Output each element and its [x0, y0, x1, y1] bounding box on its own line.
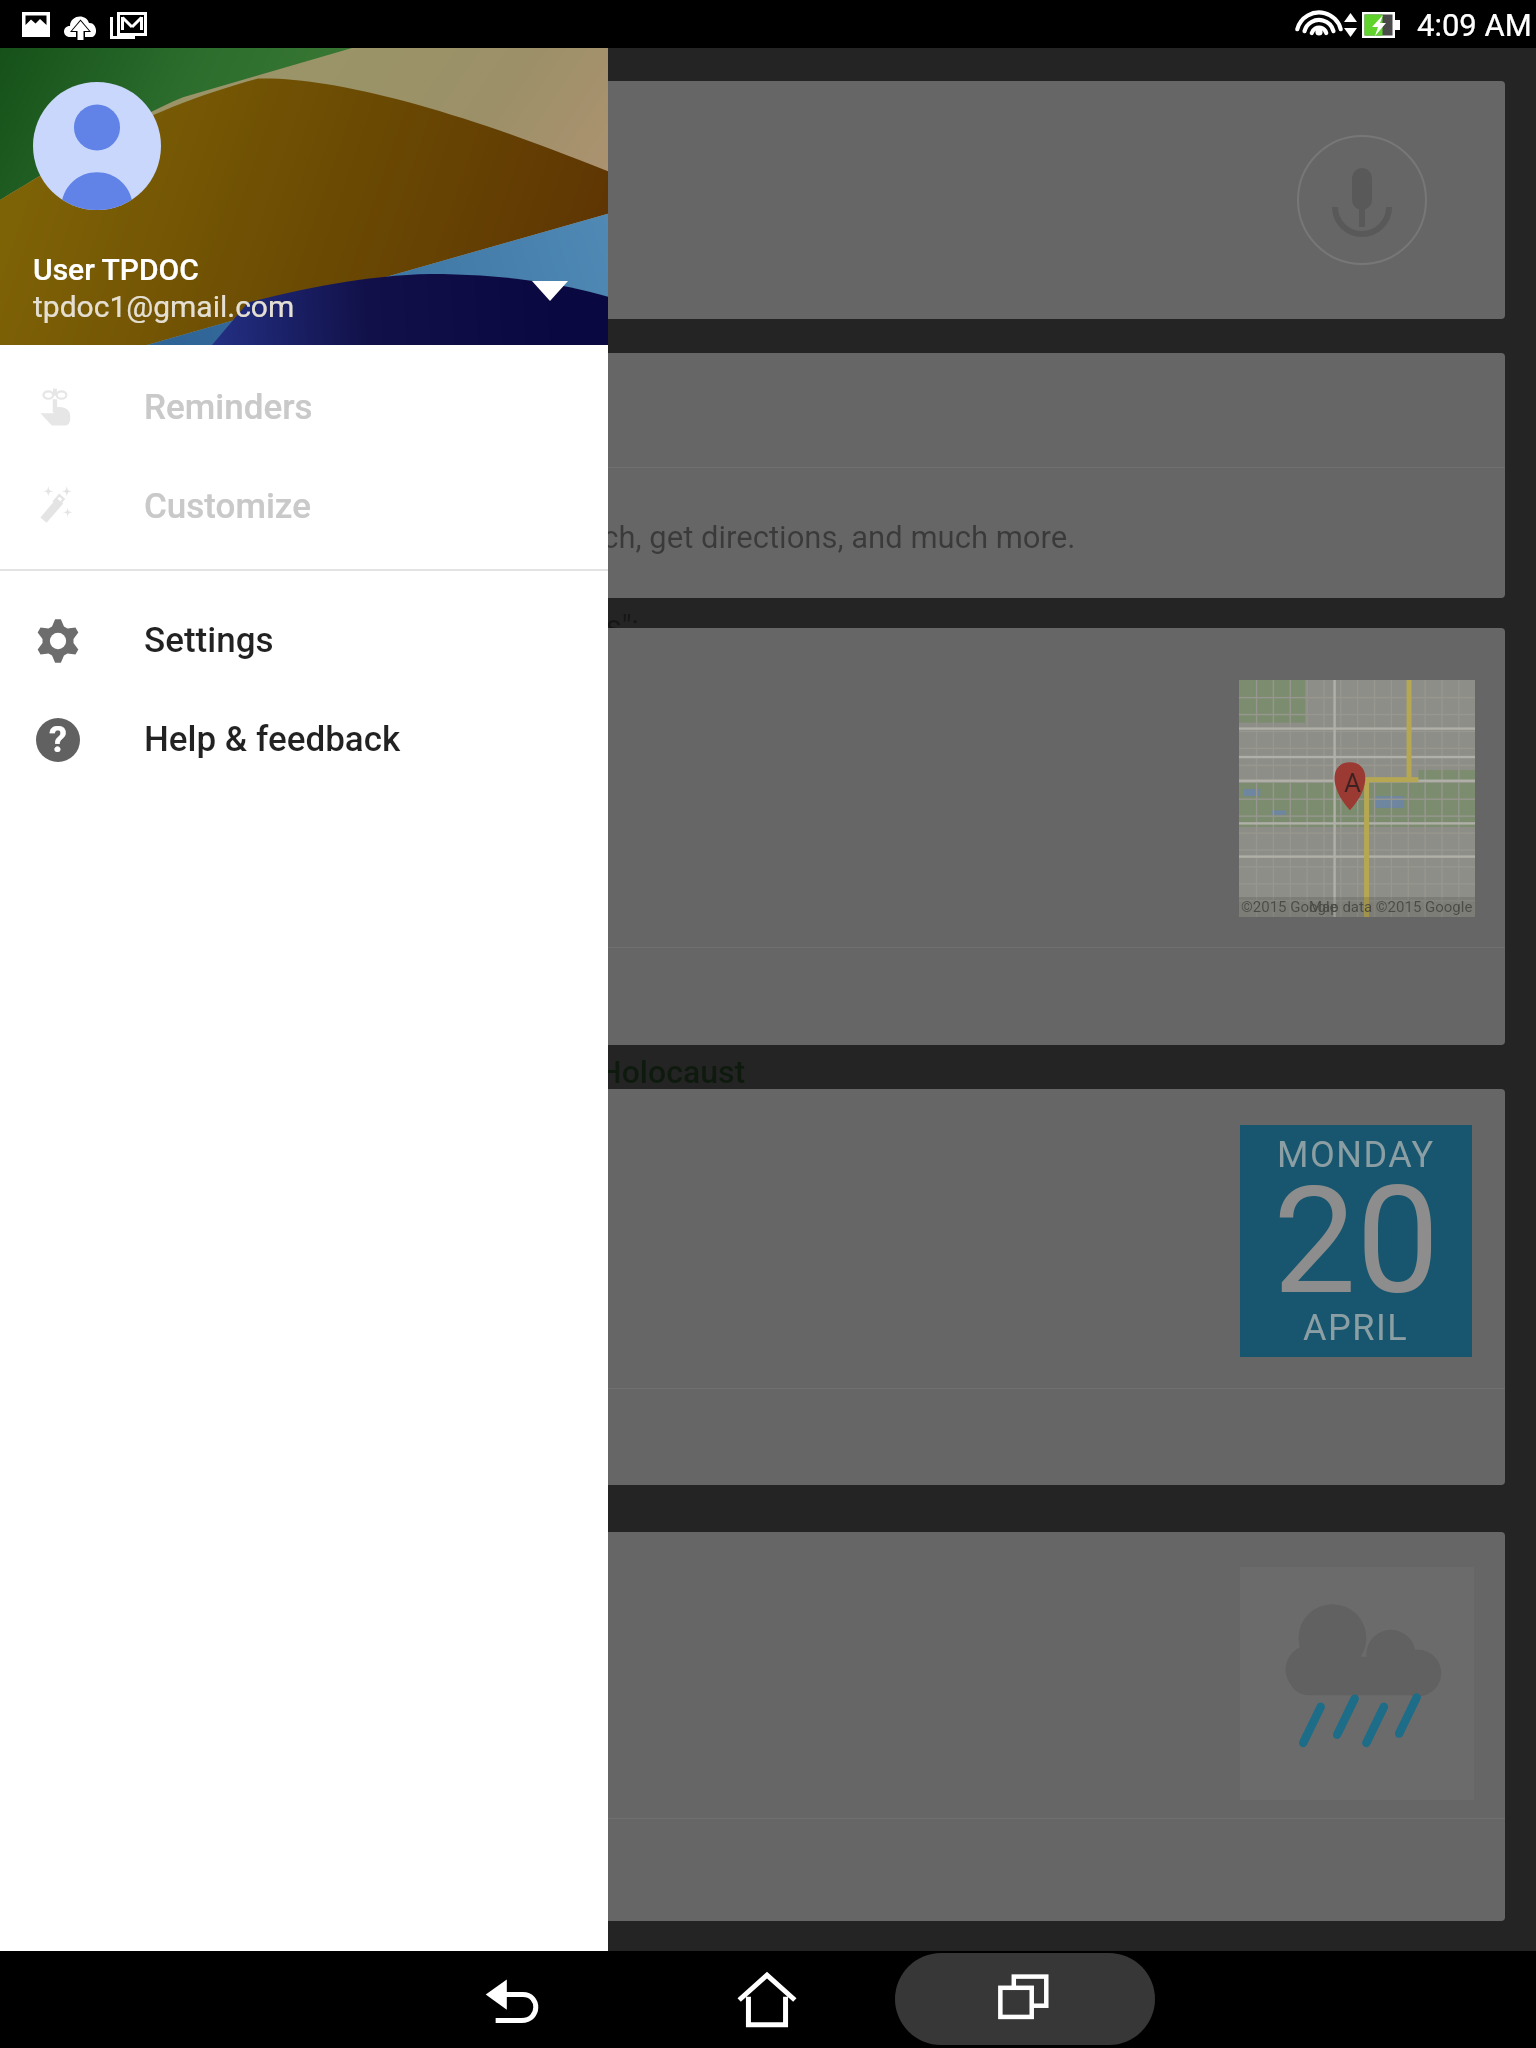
- button[interactable]: Home: [687, 1951, 847, 2048]
- staticText: ©2015 Google: [1241, 898, 1338, 916]
- staticText: MONDAY: [1277, 1134, 1435, 1176]
- staticText: Help & feedback: [144, 719, 401, 760]
- staticText: 20: [1273, 1155, 1440, 1328]
- staticText: Customize: [144, 486, 311, 527]
- staticText: APRIL: [1303, 1307, 1409, 1349]
- button[interactable]: [26, 1532, 1505, 1921]
- staticText: Use Google Now to search, get directions…: [271, 519, 1076, 555]
- staticText: Reminders: [144, 387, 313, 428]
- staticText: Map data ©2015 Google: [1309, 898, 1473, 916]
- button[interactable]: Settings: [0, 591, 608, 690]
- button[interactable]: ?: [0, 690, 608, 789]
- button[interactable]: Customize: [0, 457, 608, 556]
- staticText: 4:09 AM: [1417, 7, 1532, 43]
- staticText: Settings: [144, 620, 274, 661]
- button[interactable]: Reminders: [0, 358, 608, 457]
- button[interactable]: Recent apps: [895, 1953, 1155, 2045]
- button[interactable]: MONDAY: [26, 1089, 1505, 1485]
- button[interactable]: Back: [433, 1951, 593, 2048]
- staticText: tpdoc1@gmail.com: [33, 289, 295, 324]
- staticText: ?: [49, 719, 67, 761]
- staticText: A: [1344, 768, 1361, 798]
- button[interactable]: A: [26, 628, 1505, 1045]
- staticText: Holocaust: [599, 1053, 746, 1091]
- button[interactable]: Use Google Now to search, get directions…: [26, 353, 1505, 598]
- staticText: User TPDOC: [33, 252, 199, 287]
- staticText: for classes"; ...: [470, 608, 679, 644]
- button[interactable]: [26, 81, 1505, 319]
